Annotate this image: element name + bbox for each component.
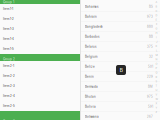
staticText: 591 <box>148 105 153 108</box>
staticText: Item 1-1 <box>3 7 13 11</box>
staticText: Q <box>155 71 157 74</box>
button[interactable]: Bangladesh <box>81 22 160 32</box>
staticText: F <box>156 23 157 26</box>
button[interactable]: Item 2-3 <box>0 81 80 91</box>
staticText: Bahamas <box>85 5 98 8</box>
staticText: Item 2-1 <box>3 64 14 68</box>
button[interactable]: Item 2-4 <box>0 91 80 101</box>
button[interactable]: Bahrain <box>81 12 160 22</box>
staticText: B <box>119 67 122 73</box>
staticText: Benin <box>85 75 94 78</box>
staticText: Item 1-2 <box>3 17 14 21</box>
staticText: Item 1-5 <box>3 47 14 51</box>
button[interactable]: Bhutan <box>81 92 160 102</box>
staticText: H <box>155 31 157 35</box>
staticText: BM <box>148 85 153 88</box>
staticText: 973 <box>147 15 153 18</box>
staticText: W <box>155 97 157 101</box>
staticText: Barbados <box>85 35 99 38</box>
staticText: K <box>155 45 157 48</box>
staticText: Item 1-3 <box>3 27 14 31</box>
button[interactable]: Item 2-1 <box>0 61 80 71</box>
staticText: D <box>155 14 157 17</box>
staticText: E <box>155 18 157 21</box>
staticText: O <box>155 62 157 65</box>
staticText: 229 <box>147 75 153 78</box>
button[interactable]: Botswana <box>81 112 160 120</box>
staticText: 32 <box>149 55 153 58</box>
staticText: S <box>155 80 157 83</box>
staticText: X <box>155 102 157 105</box>
staticText: I <box>156 36 157 39</box>
button[interactable]: Bahamas <box>81 2 160 12</box>
staticText: A <box>155 1 157 4</box>
staticText: Item 2-2 <box>3 74 15 78</box>
button[interactable]: Bermuda <box>81 82 160 92</box>
staticText: Item 1-4 <box>3 37 14 41</box>
button[interactable]: Belize <box>81 62 160 72</box>
button[interactable]: Item 1-5 <box>0 44 80 54</box>
staticText: 501 <box>148 65 153 68</box>
staticText: V <box>155 93 157 96</box>
button[interactable]: Barbados <box>81 32 160 42</box>
staticText: Y <box>155 106 157 109</box>
staticText: R <box>155 75 157 79</box>
staticText: B <box>155 5 157 8</box>
staticText: P <box>155 67 157 70</box>
button[interactable]: Item 1-2 <box>0 14 80 24</box>
staticText: Bahrain <box>85 15 97 18</box>
button[interactable]: Item 1-4 <box>0 34 80 44</box>
staticText: Bermuda <box>85 85 98 88</box>
staticText: Item 2-4 <box>3 94 15 98</box>
staticText: Belgium <box>85 55 97 58</box>
button[interactable]: Item 1-1 <box>0 4 80 14</box>
staticText: U <box>155 89 157 92</box>
button[interactable]: Benin <box>81 72 160 82</box>
staticText: Bhutan <box>85 95 96 98</box>
button[interactable]: Item 2-5 <box>0 101 80 111</box>
staticText: J <box>156 40 157 43</box>
button[interactable]: Belarus <box>81 42 160 52</box>
staticText: Bangladesh <box>85 25 103 28</box>
staticText: Botswana <box>85 115 99 118</box>
staticText: Z <box>155 111 157 114</box>
button[interactable]: Bolivia <box>81 102 160 112</box>
staticText: L <box>156 49 157 52</box>
staticText: C <box>155 9 157 13</box>
staticText: M <box>155 53 157 57</box>
staticText: 880 <box>147 25 153 28</box>
staticText: BB <box>149 35 153 38</box>
button[interactable]: Item 2-2 <box>0 71 80 81</box>
staticText: Group 1 <box>3 0 14 4</box>
staticText: Item 2-5 <box>3 104 15 108</box>
staticText: Belize <box>85 65 95 68</box>
staticText: Group 2 <box>3 57 15 61</box>
staticText: 375 <box>147 45 153 48</box>
staticText: Bolivia <box>85 105 96 108</box>
staticText: Belarus <box>85 45 96 48</box>
staticText: 267 <box>147 115 153 118</box>
staticText: Item 2-3 <box>3 84 15 88</box>
staticText: N <box>155 58 157 61</box>
button[interactable]: Item 1-3 <box>0 24 80 34</box>
staticText: BS <box>149 5 153 8</box>
staticText: G <box>155 27 157 30</box>
staticText: T <box>155 84 157 87</box>
staticText: 975 <box>147 95 153 98</box>
button[interactable]: Belgium <box>81 52 160 62</box>
